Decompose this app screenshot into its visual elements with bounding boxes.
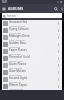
staticText: Quiet Places: [9, 62, 27, 66]
staticText: Paper Planes: [9, 48, 27, 52]
staticText: Winter Tapes: [9, 83, 27, 87]
button[interactable]: Midnight Drive: [2, 34, 62, 41]
button[interactable]: Paper Planes: [2, 48, 62, 55]
button[interactable]: Search: [52, 4, 59, 13]
staticText: The Hollow: [9, 66, 22, 69]
staticText: 9:41: [2, 0, 8, 4]
button[interactable]: Flying Colours: [2, 27, 62, 34]
button[interactable]: More options: [56, 34, 61, 41]
staticText: Greatest Hits: [9, 20, 28, 24]
button[interactable]: Winter Tapes: [2, 83, 62, 90]
staticText: Neon Harbour: [9, 38, 26, 41]
button[interactable]: Search: [2, 13, 62, 18]
button[interactable]: More options: [56, 41, 61, 48]
staticText: Scarlet Sky: [9, 31, 22, 34]
button[interactable]: Golden Hour: [2, 41, 62, 48]
staticText: Second Light: [9, 76, 27, 80]
button[interactable]: More options: [56, 83, 61, 90]
staticText: Wild Signal: [9, 73, 22, 76]
button[interactable]: Greatest Hits: [2, 20, 62, 27]
button[interactable]: More options: [56, 20, 61, 27]
button[interactable]: More options: [59, 4, 64, 13]
button[interactable]: More options: [56, 48, 61, 55]
staticText: Oceanview: [9, 52, 22, 55]
staticText: Flying Colours: [9, 27, 29, 31]
button[interactable]: More options: [56, 62, 61, 69]
staticText: Midnight Drive: [9, 34, 30, 38]
staticText: Marble Hill: [9, 80, 22, 83]
staticText: Search: [7, 14, 16, 18]
staticText: Northbound: [9, 87, 23, 90]
button[interactable]: Thread of Gold: [2, 55, 62, 62]
button[interactable]: Slow Motion: [2, 69, 62, 76]
button[interactable]: More options: [56, 76, 61, 83]
button[interactable]: Navigation menu: [0, 4, 8, 13]
staticText: Lamplight: [9, 45, 21, 48]
staticText: Various Artists: [9, 24, 26, 27]
staticText: Golden Hour: [9, 41, 27, 45]
staticText: Thread of Gold: [9, 55, 30, 59]
staticText: ALBUMS: [8, 6, 24, 11]
staticText: Ember Lane: [9, 59, 23, 62]
staticText: Slow Motion: [9, 69, 27, 73]
button[interactable]: More options: [56, 55, 61, 62]
button[interactable]: More options: [56, 69, 61, 76]
button[interactable]: More options: [56, 27, 61, 34]
button[interactable]: Second Light: [2, 76, 62, 83]
button[interactable]: Quiet Places: [2, 62, 62, 69]
